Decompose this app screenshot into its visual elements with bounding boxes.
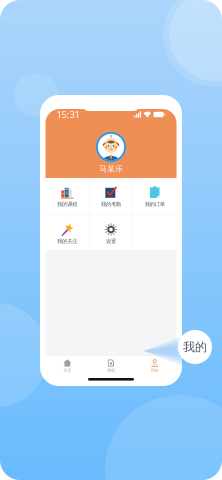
- staticText: 课程: [107, 368, 115, 373]
- staticText: 设置: [106, 238, 116, 245]
- button[interactable]: 主页: [45, 359, 89, 373]
- button[interactable]: 我的: [133, 359, 176, 373]
- button[interactable]: 我的关注: [45, 215, 89, 250]
- staticText: 我的: [183, 340, 207, 354]
- staticText: 我的: [151, 368, 159, 373]
- staticText: 我的订单: [145, 201, 165, 208]
- staticText: 我的考勤: [101, 201, 121, 208]
- button[interactable]: 我的订单: [133, 178, 176, 214]
- button[interactable]: 设置: [89, 215, 133, 250]
- button[interactable]: 我的考勤: [89, 178, 133, 214]
- staticText: 主页: [63, 368, 71, 373]
- button[interactable]: 我的: [178, 330, 212, 364]
- staticText: 15:31: [56, 108, 79, 121]
- staticText: 马某乐: [99, 164, 123, 174]
- staticText: 我的关注: [57, 238, 77, 245]
- button[interactable]: 我的课程: [45, 178, 89, 214]
- button[interactable]: 课程: [89, 359, 133, 373]
- staticText: 我的课程: [57, 201, 77, 208]
